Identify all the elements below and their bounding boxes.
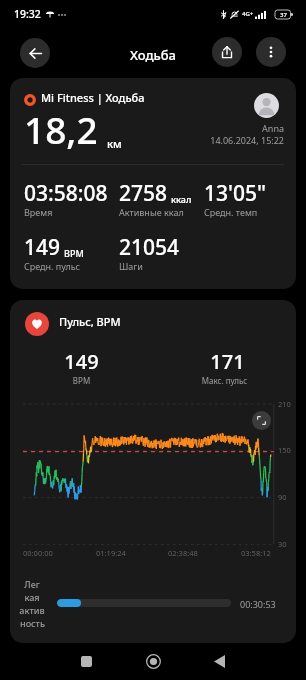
staticText: 00:00:00 [23, 548, 53, 558]
staticText: 19:32 [14, 7, 41, 21]
staticText: 03:58:12 [241, 548, 271, 558]
staticText: 30 [278, 539, 287, 549]
staticText: 00:30:53 [240, 598, 276, 610]
staticText: км [107, 136, 122, 151]
staticText: 210 [278, 399, 291, 409]
staticText: 14.06.2024, 15:22 [10, 134, 284, 146]
button[interactable]: Home [125, 643, 181, 680]
staticText: 2758 [119, 179, 168, 208]
staticText: 01:19:24 [96, 548, 126, 558]
button[interactable]: Share [212, 37, 242, 67]
staticText: ккал [171, 193, 192, 205]
staticText: Ходьба [0, 46, 306, 64]
staticText: 18,2 [24, 104, 98, 154]
staticText: BPM [10, 375, 153, 386]
staticText: Anna [10, 122, 284, 134]
button[interactable]: Back [191, 643, 247, 680]
button[interactable]: More options [256, 37, 286, 67]
staticText: актив [19, 604, 45, 617]
staticText: 90 [278, 492, 287, 502]
staticText: Шаги [119, 260, 143, 272]
button[interactable]: Back [20, 38, 50, 68]
staticText: 150 [278, 445, 291, 455]
staticText: 149 [24, 233, 61, 262]
staticText: Лег [24, 578, 40, 591]
staticText: Макс. пульс [153, 375, 296, 386]
staticText: 21054 [119, 233, 180, 262]
staticText: 149 [10, 348, 153, 375]
staticText: Mi Fitness | Ходьба [41, 90, 145, 105]
staticText: 02:38:48 [168, 548, 198, 558]
staticText: 171 [156, 348, 296, 375]
staticText: Время [24, 206, 53, 218]
staticText: Средн. темп [204, 206, 258, 218]
staticText: BPM [64, 247, 84, 259]
staticText: Активные ккал [119, 206, 184, 218]
staticText: Средн. пульс [24, 260, 81, 272]
staticText: 13'05" [204, 179, 267, 208]
staticText: 4G+ [242, 10, 254, 18]
staticText: Пульс, BPM [59, 314, 121, 329]
staticText: кая [24, 591, 40, 604]
staticText: ность [20, 617, 45, 630]
staticText: 37 [280, 11, 287, 19]
staticText: 03:58:08 [24, 179, 108, 208]
button[interactable]: Recent apps [58, 643, 114, 680]
button[interactable]: Expand chart [252, 411, 271, 430]
